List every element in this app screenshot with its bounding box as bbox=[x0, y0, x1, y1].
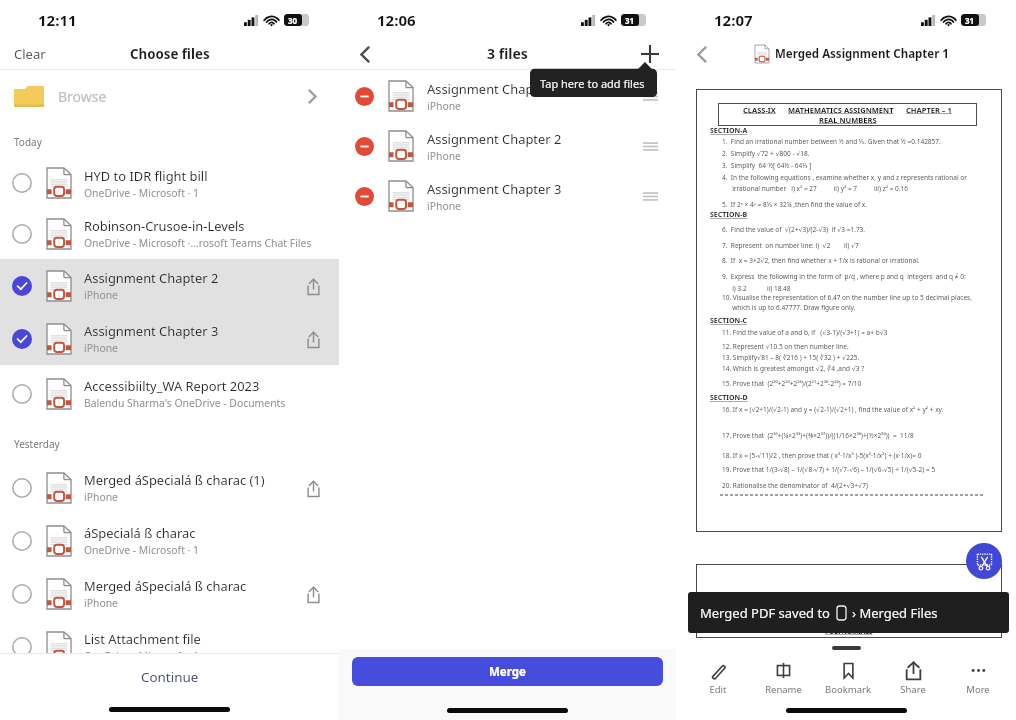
staticText: which is up to 6.47777. Draw figure only… bbox=[722, 303, 856, 312]
staticText: Balendu Sharma's OneDrive - Documents bbox=[84, 396, 286, 410]
button[interactable]: Back bbox=[352, 41, 378, 67]
button[interactable]: More bbox=[952, 661, 1004, 696]
staticText: SECTION-A bbox=[710, 126, 748, 136]
button[interactable]: Bookmark bbox=[822, 661, 874, 696]
staticText: CHAPTER – 1 bbox=[906, 105, 952, 115]
staticText: 5. If 2ˣ × 4ʸ = 8⅓ × 32¼ ,then find the … bbox=[722, 200, 868, 209]
staticText: REAL NUMBERS bbox=[819, 115, 877, 125]
button[interactable]: Reorder bbox=[638, 84, 662, 108]
button[interactable]: Merge bbox=[352, 657, 663, 686]
staticText: Merge bbox=[489, 664, 526, 680]
button[interactable]: Share bbox=[301, 476, 325, 500]
staticText: Today bbox=[14, 135, 42, 149]
staticText: 10. Visualise the representation of 6.47… bbox=[722, 293, 972, 302]
staticText: iPhone bbox=[427, 149, 461, 163]
staticText: 13. Simplify√81 – 8( ∛216 ) + 15( ∛32 ) … bbox=[722, 353, 860, 362]
staticText: SECTION-B bbox=[710, 210, 748, 220]
staticText: HYD to IDR flight bill bbox=[84, 167, 208, 185]
staticText: 14. Which is greatest amongst √2, ∛4 ,an… bbox=[722, 364, 865, 373]
staticText: irrational number i) x² = 27 ii) y² = 7 … bbox=[722, 184, 908, 193]
staticText: Bookmark bbox=[825, 683, 871, 696]
button[interactable]: Share bbox=[301, 274, 325, 298]
staticText: Yesterday bbox=[14, 437, 60, 451]
staticText: 30 bbox=[288, 15, 298, 26]
button[interactable]: Share bbox=[887, 661, 939, 696]
staticText: 6. Find the value of √(2+√3)/(2-√3) if √… bbox=[722, 225, 866, 234]
button[interactable]: Rename bbox=[757, 661, 809, 696]
button[interactable]: Remove bbox=[354, 186, 374, 206]
staticText: Share bbox=[900, 683, 926, 696]
staticText: 17. Prove that (2³⁶+(¼×2³³)+(⅜×2³⁷))/((1… bbox=[722, 431, 914, 440]
button[interactable]: Share bbox=[301, 327, 325, 351]
staticText: OneDrive - Microsoft · 1 bbox=[84, 186, 200, 200]
staticText: Rename bbox=[765, 683, 802, 696]
staticText: Assignment Chapter 2 bbox=[427, 130, 562, 148]
button[interactable]: Assignment Chapter 3 bbox=[0, 312, 339, 365]
button[interactable]: áSpecialá ß charac bbox=[0, 514, 339, 567]
staticText: 12:11 bbox=[38, 10, 77, 30]
staticText: 9. Express the following in the form of … bbox=[722, 272, 966, 281]
staticText: Edit bbox=[709, 683, 727, 696]
staticText: 19. Prove that 1/(3-√8) – 1/(√8-√7) + 1/… bbox=[722, 465, 936, 474]
button[interactable]: Remove bbox=[354, 86, 374, 106]
staticText: 4. In the following equations , examine … bbox=[722, 173, 967, 182]
staticText: 3. Simplify 64⁻½[ 64½ - 64⅓ ] bbox=[722, 161, 812, 170]
button[interactable]: Edit bbox=[692, 661, 744, 696]
button[interactable]: Continue bbox=[0, 654, 339, 720]
staticText: OneDrive - Microsoft ·...rosoft Teams Ch… bbox=[84, 236, 312, 250]
button[interactable]: Share bbox=[301, 582, 325, 606]
staticText: Merged PDF saved to bbox=[700, 604, 830, 622]
staticText: Tap here to add files bbox=[540, 76, 645, 91]
staticText: Choose files bbox=[130, 45, 210, 63]
staticText: 1. Find an irrational number between ½ a… bbox=[722, 137, 941, 146]
staticText: 8. If x = 3+2√2, then find whether x + 1… bbox=[722, 256, 920, 265]
button[interactable]: List Attachment file bbox=[0, 620, 339, 673]
staticText: Merged Assignment Chapter 1 bbox=[775, 46, 949, 62]
button[interactable]: HYD to IDR flight bill bbox=[0, 158, 339, 208]
button[interactable]: Crop bbox=[966, 543, 1002, 579]
staticText: 7. Represent on number line: i) √2 ii) √… bbox=[722, 241, 859, 250]
staticText: SECTION-C bbox=[710, 316, 747, 326]
staticText: › Merged Files bbox=[852, 604, 938, 622]
button[interactable]: Add files bbox=[637, 41, 663, 67]
staticText: i) 3.2 ii) 18.48 bbox=[722, 284, 791, 293]
staticText: iPhone bbox=[84, 288, 118, 302]
staticText: iPhone bbox=[427, 199, 461, 213]
button[interactable]: Remove bbox=[354, 136, 374, 156]
staticText: 11. Find the value of a and b, if (√3-1)… bbox=[722, 328, 888, 337]
staticText: Assignment Chapter 1 bbox=[427, 80, 562, 98]
button[interactable]: Assignment Chapter 2 bbox=[0, 259, 339, 312]
staticText: CLASS-IX bbox=[743, 105, 776, 115]
staticText: 20. Rationalise the denominator of 4/(2+… bbox=[722, 481, 868, 490]
staticText: 18. If x = (5-√11)/2 , then prove that (… bbox=[722, 451, 922, 460]
button[interactable]: Remove bbox=[339, 171, 676, 221]
staticText: Merged áSpecialá ß charac (1) bbox=[84, 471, 265, 489]
button[interactable]: Reorder bbox=[638, 134, 662, 158]
button[interactable]: Remove bbox=[339, 121, 676, 171]
staticText: MATHEMATICS ASSIGNMENT bbox=[788, 105, 894, 115]
button[interactable]: Reorder bbox=[638, 184, 662, 208]
staticText: iPhone bbox=[84, 596, 118, 610]
staticText: áSpecialá ß charac bbox=[84, 524, 196, 542]
staticText: iPhone bbox=[84, 490, 118, 504]
button[interactable]: Back bbox=[689, 41, 715, 67]
button[interactable]: Clear bbox=[14, 45, 46, 63]
staticText: List Attachment file bbox=[84, 630, 201, 648]
staticText: 15. Prove that (2³⁰+2²⁹+2²⁸)/(2²¹+2³⁰-2²… bbox=[722, 379, 862, 388]
staticText: Merged áSpecialá ß charac bbox=[84, 577, 247, 595]
staticText: Continue bbox=[141, 668, 199, 686]
button[interactable]: Accessibiilty_WA Report 2023 bbox=[0, 365, 339, 422]
staticText: OneDrive - Microsoft · 1 bbox=[84, 649, 200, 663]
button[interactable]: Robinson-Crusoe-in-Levels bbox=[0, 208, 339, 259]
staticText: SECTION-D bbox=[710, 393, 748, 403]
staticText: Assignment Chapter 2 bbox=[84, 269, 219, 287]
button[interactable]: Browse bbox=[0, 70, 339, 122]
staticText: Accessibiilty_WA Report 2023 bbox=[84, 377, 260, 395]
staticText: POLYNOMIALS bbox=[825, 627, 873, 636]
button[interactable]: Merged áSpecialá ß charac (1) bbox=[0, 461, 339, 514]
button[interactable]: Merged áSpecialá ß charac bbox=[0, 567, 339, 620]
staticText: iPhone bbox=[427, 99, 461, 113]
staticText: 3 files bbox=[487, 44, 528, 63]
staticText: 12:06 bbox=[377, 10, 416, 30]
button[interactable]: Remove bbox=[339, 71, 676, 121]
